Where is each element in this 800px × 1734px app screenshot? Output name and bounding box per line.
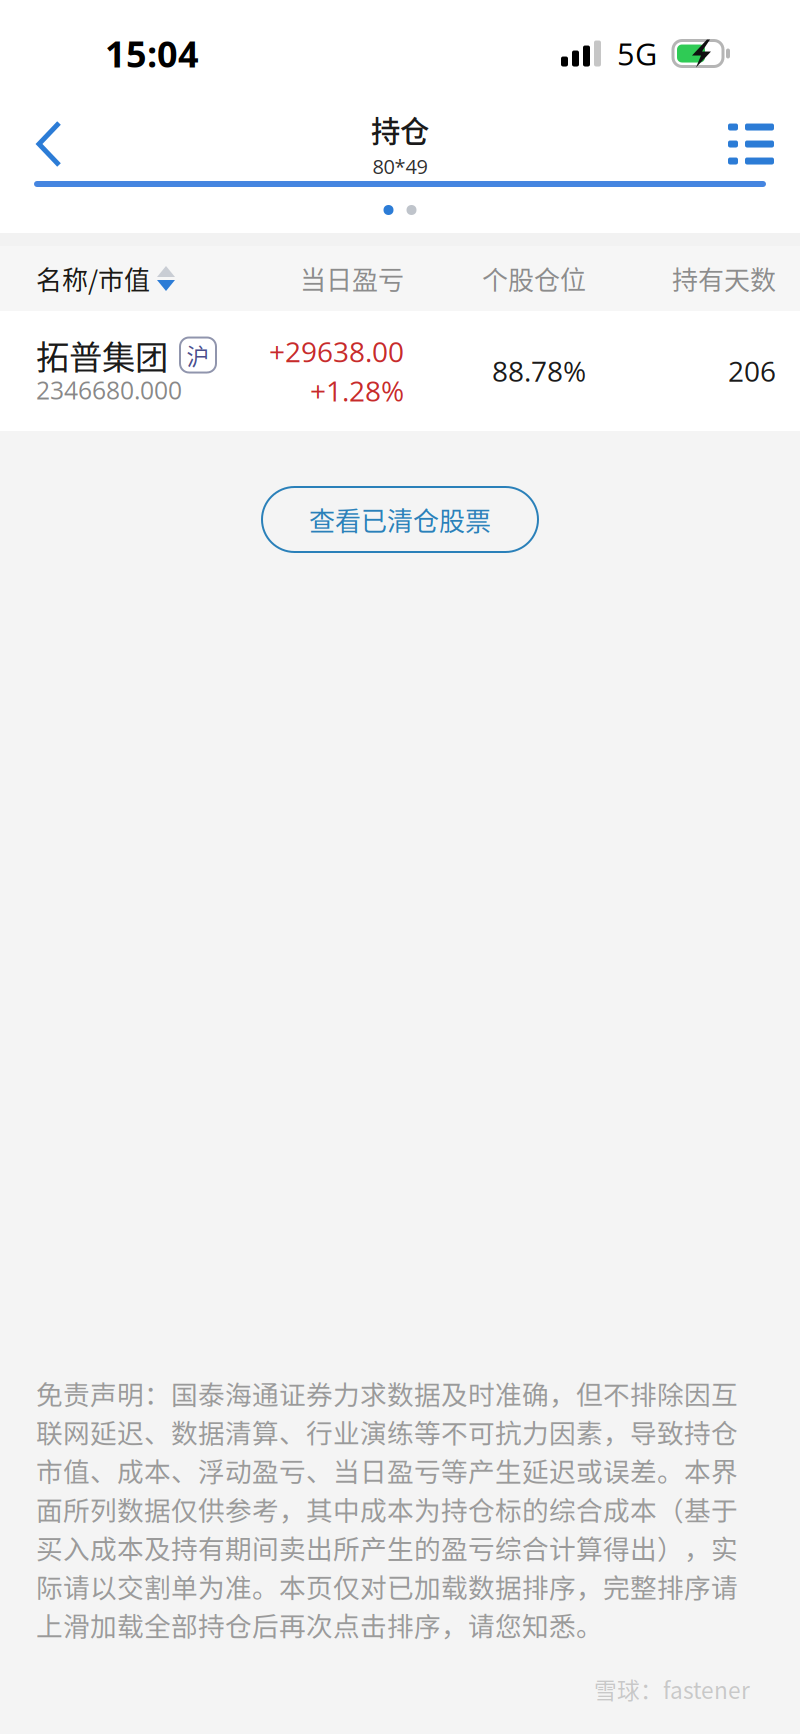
button[interactable]: 查看已清仓股票: [262, 487, 538, 552]
staticText: 206: [728, 352, 776, 390]
staticText: 80*49: [372, 153, 427, 180]
staticText: 持有天数: [672, 260, 776, 297]
button[interactable]: Back: [0, 104, 98, 184]
button[interactable]: 拓普集团: [0, 311, 800, 431]
staticText: 5G: [617, 33, 657, 74]
button[interactable]: 名称/市值: [0, 246, 260, 311]
staticText: 名称/市值: [36, 260, 150, 297]
button[interactable]: 个股仓位: [404, 246, 586, 311]
staticText: 88.78%: [492, 352, 586, 390]
staticText: 雪球：fastener: [594, 1673, 750, 1705]
staticText: 2346680.000: [36, 373, 182, 407]
staticText: 个股仓位: [482, 260, 586, 297]
button[interactable]: 持有天数: [586, 246, 776, 311]
staticText: 当日盈亏: [300, 260, 404, 297]
staticText: 15:04: [105, 29, 199, 78]
staticText: 沪: [186, 339, 209, 371]
staticText: +29638.00: [269, 332, 404, 370]
staticText: 查看已清仓股票: [309, 501, 491, 538]
staticText: 免责声明：国泰海通证券力求数据及时准确，但不排除因互联网延迟、数据清算、行业演练…: [36, 1374, 738, 1644]
button[interactable]: 当日盈亏: [260, 246, 404, 311]
staticText: 拓普集团: [36, 331, 168, 379]
staticText: +1.28%: [310, 371, 404, 410]
button[interactable]: Sort settings: [702, 104, 800, 184]
staticText: 持仓: [371, 108, 429, 151]
